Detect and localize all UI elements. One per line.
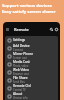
staticText: About — [13, 92, 23, 96]
staticText: Support various devices — [2, 3, 52, 9]
staticText: Web Video — [13, 68, 29, 72]
button[interactable]: Mirror Phone — [5, 52, 58, 60]
staticText: Version info — [13, 96, 28, 100]
staticText: Connect — [13, 48, 24, 52]
button[interactable]: File Share — [5, 76, 58, 84]
staticText: Media Cast — [13, 60, 30, 64]
staticText: File Share — [13, 76, 28, 80]
staticText: Send files — [13, 80, 25, 84]
staticText: Easy satisfy screen sharer — [2, 9, 56, 15]
staticText: Remote Ctrl — [13, 84, 31, 88]
button[interactable]: Settings — [5, 36, 58, 44]
staticText: Add Device — [13, 44, 30, 48]
button[interactable]: Media Cast — [5, 60, 58, 68]
staticText: Photo, video — [13, 64, 29, 68]
button[interactable]: Settings — [54, 27, 59, 32]
button[interactable]: Remote Ctrl — [5, 84, 58, 92]
button[interactable]: About — [5, 92, 58, 100]
staticText: Settings — [13, 38, 26, 42]
staticText: Screen cast — [13, 56, 27, 60]
button[interactable]: Menu — [5, 27, 10, 32]
staticText: Control TV — [13, 88, 26, 92]
button[interactable]: Add Device — [5, 44, 58, 52]
staticText: Browser cast — [13, 72, 29, 76]
staticText: Mirror Phone — [13, 52, 33, 56]
button[interactable]: Search — [49, 27, 54, 32]
button[interactable]: Web Video — [5, 68, 58, 76]
staticText: Remote — [14, 27, 29, 32]
